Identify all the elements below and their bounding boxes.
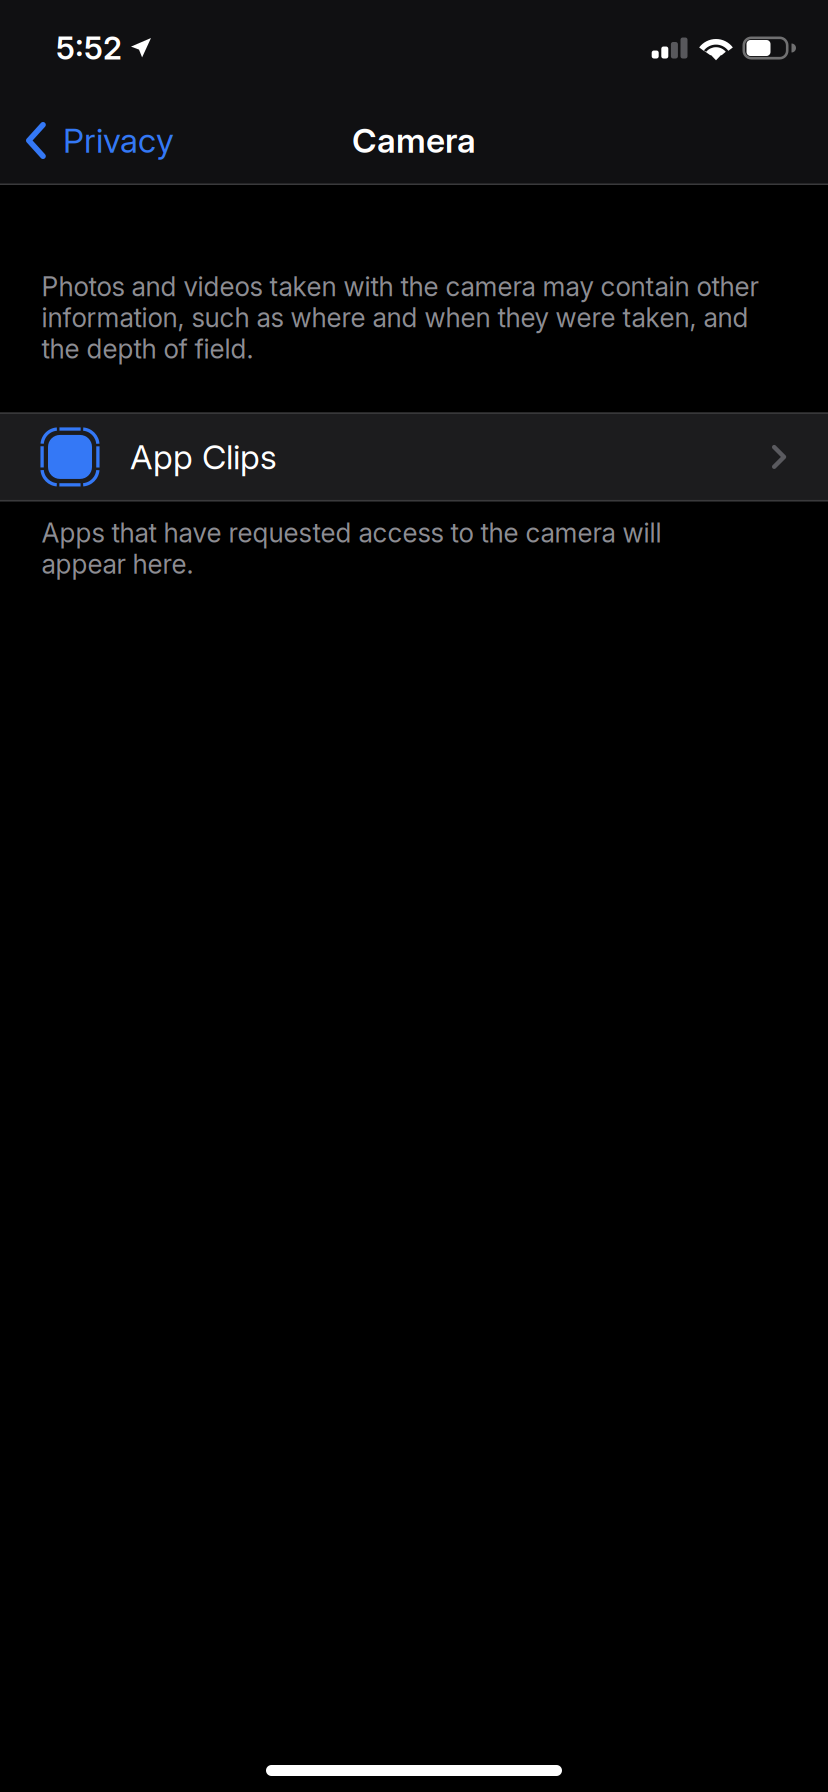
- staticText: 5:52: [56, 29, 122, 66]
- button[interactable]: Privacy: [0, 96, 194, 185]
- button[interactable]: App Clips: [0, 412, 828, 501]
- staticText: Camera: [352, 121, 476, 160]
- staticText: Photos and videos taken with the camera …: [41, 271, 758, 364]
- staticText: Apps that have requested access to the c…: [41, 517, 661, 580]
- staticText: Privacy: [63, 121, 174, 160]
- staticText: App Clips: [130, 437, 277, 477]
